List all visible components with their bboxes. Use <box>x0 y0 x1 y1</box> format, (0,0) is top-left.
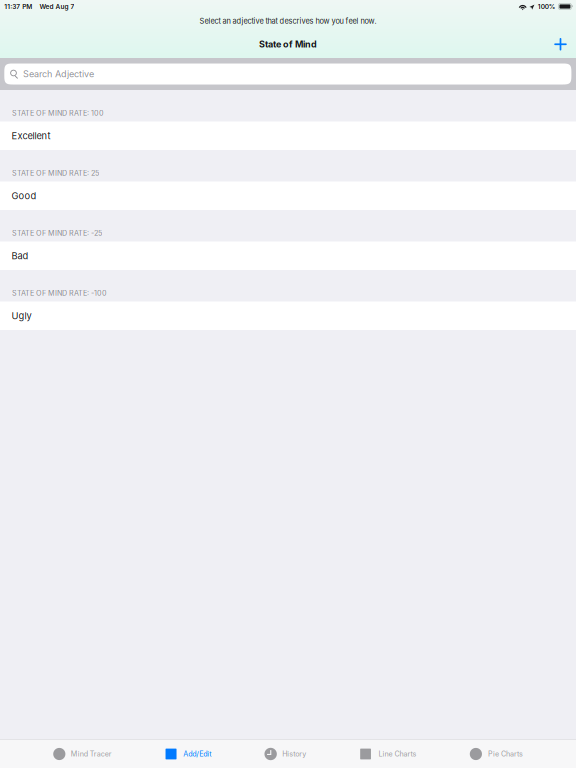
staticText: 11:37 PM <box>4 2 32 10</box>
staticText: State of Mind <box>259 39 317 50</box>
button[interactable]: Line Charts <box>359 740 417 768</box>
staticText: Add/Edit <box>183 750 211 758</box>
staticText: Good <box>12 190 37 201</box>
staticText: STATE OF MIND RATE: -25 <box>12 229 102 237</box>
button[interactable]: Ugly <box>0 301 576 330</box>
staticText: Bad <box>12 250 29 261</box>
button[interactable]: Search Adjective <box>0 58 576 90</box>
button[interactable]: Add/Edit <box>165 740 211 768</box>
button[interactable]: History <box>264 740 306 768</box>
staticText: Select an adjective that descrives how y… <box>199 16 376 25</box>
button[interactable]: Add <box>548 37 572 51</box>
staticText: Ugly <box>12 310 32 321</box>
staticText: Excellent <box>12 130 51 141</box>
button[interactable]: Bad <box>0 241 576 270</box>
button[interactable]: Excellent <box>0 121 576 150</box>
button[interactable]: Mind Tracer <box>53 740 112 768</box>
staticText: Wed Aug 7 <box>39 2 74 10</box>
staticText: Pie Charts <box>488 750 523 758</box>
staticText: STATE OF MIND RATE: 100 <box>12 109 104 117</box>
button[interactable]: Good <box>0 181 576 210</box>
staticText: Mind Tracer <box>71 750 112 758</box>
staticText: History <box>282 750 306 758</box>
staticText: Search Adjective <box>23 68 94 79</box>
staticText: STATE OF MIND RATE: -100 <box>12 289 107 297</box>
staticText: 100% <box>538 2 556 10</box>
staticText: Line Charts <box>379 750 417 758</box>
staticText: STATE OF MIND RATE: 25 <box>12 169 99 177</box>
button[interactable]: Pie Charts <box>470 740 523 768</box>
